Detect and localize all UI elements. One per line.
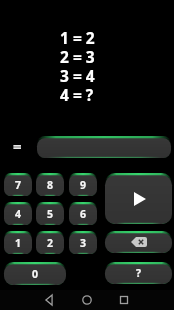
staticText: 3 [80,236,87,250]
button[interactable]: 6 [69,202,97,225]
staticText: ? [136,266,142,280]
button[interactable] [105,231,172,253]
staticText: 2 = 3 [60,46,95,65]
staticText: 2 [47,236,54,250]
button[interactable] [42,293,56,307]
button[interactable]: 9 [69,173,97,196]
staticText: 7 [15,178,22,192]
button[interactable]: 3 [69,231,97,254]
button[interactable] [37,136,171,158]
button[interactable]: ? [105,262,172,284]
staticText: 4 = ? [60,84,94,103]
staticText: 4 [15,207,22,221]
button[interactable]: 5 [36,202,64,225]
button[interactable] [105,173,172,224]
staticText: 6 [80,207,87,221]
button[interactable]: 8 [36,173,64,196]
button[interactable]: 7 [4,173,32,196]
button[interactable]: 4 [4,202,32,225]
button[interactable]: 0 [4,262,66,285]
button[interactable]: 2 [36,231,64,254]
staticText: 9 [80,178,87,192]
staticText: 3 = 4 [60,65,95,84]
staticText: 5 [47,207,54,221]
staticText: 0 [32,267,39,281]
button[interactable]: 1 [4,231,32,254]
button[interactable] [117,293,131,307]
staticText: = [13,136,22,156]
staticText: 1 [15,236,22,250]
staticText: 1 = 2 [60,27,95,46]
staticText: 8 [47,178,54,192]
button[interactable] [80,293,94,307]
